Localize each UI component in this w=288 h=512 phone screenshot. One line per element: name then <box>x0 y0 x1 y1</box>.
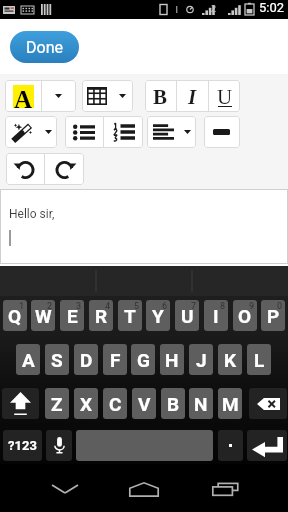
staticText: T <box>124 305 136 327</box>
staticText: A <box>14 86 33 109</box>
staticText: U <box>217 85 233 108</box>
staticText: G <box>137 349 150 371</box>
button[interactable]: F <box>103 344 127 375</box>
staticText: ?123 <box>8 438 37 453</box>
button[interactable]: Underline <box>209 80 240 112</box>
staticText: 2 <box>211 2 217 14</box>
button[interactable]: G <box>131 344 155 375</box>
button[interactable]: T <box>118 300 142 331</box>
staticText: U <box>181 305 194 327</box>
button[interactable]: Horizontal rule <box>204 116 239 148</box>
button[interactable]: Bulleted list <box>65 116 103 148</box>
staticText: D <box>80 349 93 371</box>
staticText: A <box>22 349 35 371</box>
button[interactable]: O <box>233 300 257 331</box>
button[interactable]: Table options <box>112 80 132 112</box>
button[interactable]: D <box>74 344 98 375</box>
button[interactable]: C <box>103 388 127 419</box>
staticText: 1 <box>19 301 25 312</box>
button[interactable]: P <box>261 300 285 331</box>
staticText: O <box>238 305 252 327</box>
button[interactable]: Period <box>218 430 243 461</box>
staticText: S <box>51 349 63 371</box>
staticText: N <box>194 393 208 415</box>
button[interactable]: K <box>218 344 242 375</box>
staticText: I <box>188 85 197 108</box>
staticText: B <box>167 393 180 415</box>
button[interactable]: Symbols <box>3 430 42 461</box>
button[interactable]: Recents <box>201 472 251 506</box>
button[interactable]: Italic <box>177 80 208 112</box>
staticText: 0 <box>277 301 283 312</box>
staticText: M <box>222 393 239 415</box>
staticText: Done <box>26 38 63 57</box>
staticText: F <box>110 349 121 371</box>
button[interactable]: M <box>218 388 242 419</box>
button[interactable]: X <box>74 388 98 419</box>
button[interactable]: Home <box>119 472 169 506</box>
button[interactable]: R <box>89 300 113 331</box>
button[interactable]: W <box>31 300 55 331</box>
button[interactable]: N <box>189 388 213 419</box>
button[interactable]: Styles <box>5 116 40 148</box>
staticText: 7 <box>191 301 197 312</box>
staticText: X <box>80 393 93 415</box>
button[interactable]: More align <box>180 116 195 148</box>
staticText: Q <box>8 305 22 327</box>
button[interactable]: Text color <box>5 80 41 112</box>
staticText: I <box>213 305 219 327</box>
staticText: B <box>153 85 168 108</box>
staticText: 8 <box>220 301 226 312</box>
button[interactable]: Align <box>147 116 180 148</box>
staticText: 3 <box>76 301 82 312</box>
staticText: 9 <box>249 301 255 312</box>
button[interactable]: Backspace <box>249 388 287 419</box>
staticText: R <box>95 305 108 327</box>
button[interactable]: S <box>45 344 69 375</box>
staticText: K <box>224 349 237 371</box>
button[interactable]: Insert table <box>82 80 112 112</box>
button[interactable]: I <box>204 300 228 331</box>
button[interactable]: E <box>60 300 84 331</box>
staticText: J <box>196 349 207 371</box>
button[interactable]: U <box>175 300 199 331</box>
button[interactable]: Y <box>146 300 170 331</box>
button[interactable]: Done <box>10 31 79 63</box>
staticText: Y <box>152 305 164 327</box>
button[interactable]: L <box>247 344 271 375</box>
staticText: P <box>267 305 280 327</box>
button[interactable]: B <box>161 388 185 419</box>
staticText: E <box>67 305 78 327</box>
button[interactable]: H <box>160 344 184 375</box>
button[interactable]: Q <box>3 300 27 331</box>
button[interactable]: Z <box>45 388 69 419</box>
button[interactable]: Shift <box>2 388 39 419</box>
button[interactable]: Back <box>40 472 90 506</box>
button[interactable]: More text colors <box>42 80 75 112</box>
button[interactable]: J <box>189 344 213 375</box>
staticText: W <box>35 305 52 327</box>
staticText: 5:02 <box>259 0 285 15</box>
staticText: Z <box>51 393 63 415</box>
staticText: 4 <box>105 301 111 312</box>
button[interactable]: Undo <box>6 153 44 185</box>
button[interactable]: A <box>16 344 40 375</box>
staticText: Hello sir, <box>9 207 55 221</box>
staticText: 6 <box>162 301 168 312</box>
staticText: H <box>165 349 179 371</box>
staticText: C <box>109 393 122 415</box>
button[interactable]: Enter <box>247 430 287 461</box>
button[interactable]: Redo <box>45 153 83 185</box>
button[interactable]: Bold <box>145 80 176 112</box>
button[interactable]: Numbered list <box>104 116 142 148</box>
button[interactable]: More styles <box>40 116 56 148</box>
staticText: 2 <box>47 301 53 312</box>
staticText: 5 <box>134 301 140 312</box>
staticText: L <box>254 349 265 371</box>
button[interactable]: Voice input <box>46 430 72 461</box>
button[interactable]: V <box>132 388 156 419</box>
staticText: V <box>138 393 151 415</box>
